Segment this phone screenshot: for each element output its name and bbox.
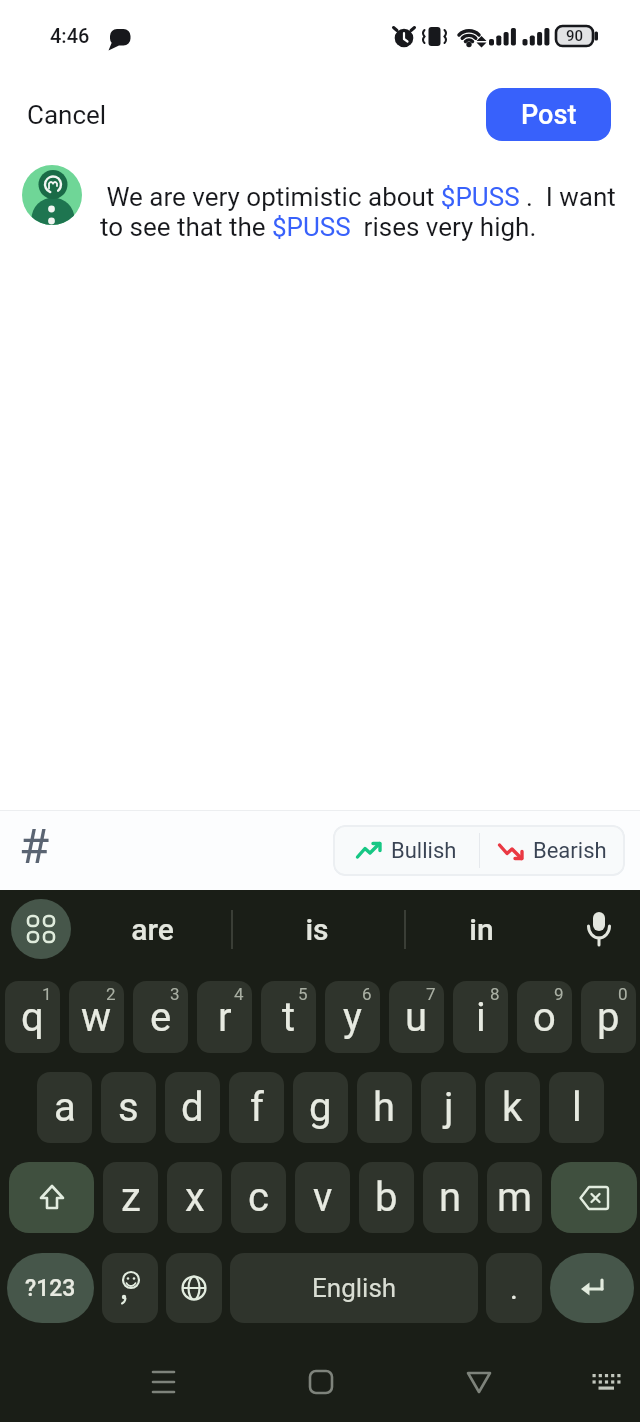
button[interactable] [11, 899, 71, 959]
staticText: d [181, 1084, 204, 1131]
button[interactable]: x [167, 1162, 222, 1233]
button[interactable]: y [325, 981, 380, 1053]
button[interactable] [166, 1253, 222, 1323]
staticText: Post [521, 99, 577, 131]
staticText: in [469, 912, 494, 947]
button[interactable]: # [19, 818, 50, 875]
staticText: n [439, 1174, 462, 1221]
staticText: k [502, 1084, 523, 1131]
staticText: 1 [42, 984, 52, 1004]
button[interactable]: a [37, 1072, 92, 1143]
button[interactable]: in [421, 899, 541, 960]
button[interactable]: o [517, 981, 572, 1053]
button[interactable] [142, 1361, 184, 1403]
staticText: is [305, 912, 329, 947]
staticText: z [121, 1174, 141, 1221]
button[interactable]: k [485, 1072, 540, 1143]
staticText: 3 [170, 984, 180, 1004]
button[interactable]: is [257, 899, 377, 960]
staticText: Bullish [391, 838, 457, 864]
staticText: p [597, 994, 620, 1041]
staticText: u [405, 994, 428, 1041]
staticText: # [19, 818, 50, 875]
button[interactable]: m [487, 1162, 542, 1233]
button[interactable]: c [231, 1162, 286, 1233]
staticText: q [21, 994, 44, 1041]
staticText: 7 [426, 984, 436, 1004]
button[interactable]: f [229, 1072, 284, 1143]
staticText: 8 [490, 984, 500, 1004]
button[interactable]: ?123 [7, 1253, 94, 1323]
staticText: 90 [556, 27, 593, 45]
button[interactable]: h [357, 1072, 412, 1143]
button[interactable] [300, 1361, 342, 1403]
button[interactable]: Cancel [27, 100, 107, 130]
staticText: y [343, 994, 362, 1041]
button[interactable] [576, 905, 622, 955]
staticText: are [131, 912, 174, 947]
staticText: e [150, 994, 172, 1041]
button[interactable] [102, 1253, 158, 1323]
staticText: ?123 [25, 1275, 76, 1302]
staticText: . [510, 1271, 518, 1306]
button[interactable] [551, 1162, 637, 1233]
button[interactable]: i [453, 981, 508, 1053]
staticText: Cancel [27, 100, 107, 130]
button[interactable]: English [230, 1253, 478, 1323]
staticText: 5 [298, 984, 308, 1004]
staticText: 2 [106, 984, 116, 1004]
staticText: h [373, 1084, 396, 1131]
staticText: b [375, 1174, 398, 1221]
button[interactable]: g [293, 1072, 348, 1143]
staticText: a [54, 1084, 76, 1131]
button[interactable]: Bearish [480, 825, 625, 876]
staticText: l [572, 1084, 582, 1131]
staticText: v [313, 1174, 333, 1221]
button[interactable]: q [5, 981, 60, 1053]
button[interactable]: r [197, 981, 252, 1053]
staticText: to see that the $PUSS rises very high. [100, 212, 537, 242]
button[interactable] [586, 1361, 628, 1403]
button[interactable] [9, 1162, 94, 1233]
button[interactable]: d [165, 1072, 220, 1143]
button[interactable]: l [549, 1072, 604, 1143]
button[interactable] [550, 1253, 634, 1323]
staticText: s [118, 1084, 139, 1131]
button[interactable]: n [423, 1162, 478, 1233]
staticText: i [476, 994, 486, 1041]
button[interactable]: p [581, 981, 636, 1053]
button[interactable]: v [295, 1162, 350, 1233]
staticText: g [309, 1084, 332, 1131]
staticText: 9 [554, 984, 564, 1004]
staticText: t [282, 994, 296, 1041]
staticText: Bearish [533, 838, 607, 864]
staticText: 6 [362, 984, 372, 1004]
button[interactable] [458, 1361, 500, 1403]
button[interactable]: Post [486, 88, 611, 141]
staticText: We are very optimistic about $PUSS . I w… [100, 182, 616, 212]
button[interactable]: u [389, 981, 444, 1053]
staticText: 4 [234, 984, 244, 1004]
button[interactable]: . [486, 1253, 542, 1323]
button[interactable]: w [69, 981, 124, 1053]
staticText: 4:46 [50, 24, 90, 47]
staticText: c [248, 1174, 269, 1221]
staticText: j [444, 1084, 454, 1131]
button[interactable]: Bullish [333, 825, 479, 876]
staticText: w [81, 994, 112, 1041]
staticText: 0 [618, 984, 628, 1004]
button[interactable]: z [103, 1162, 158, 1233]
staticText: English [312, 1273, 397, 1303]
staticText: r [218, 994, 232, 1041]
button[interactable]: e [133, 981, 188, 1053]
button[interactable]: t [261, 981, 316, 1053]
staticText: m [497, 1174, 533, 1221]
staticText: f [250, 1084, 264, 1131]
button[interactable]: s [101, 1072, 156, 1143]
staticText: o [533, 994, 556, 1041]
staticText: x [185, 1174, 205, 1221]
button[interactable]: are [92, 899, 212, 960]
button[interactable]: j [421, 1072, 476, 1143]
button[interactable]: b [359, 1162, 414, 1233]
